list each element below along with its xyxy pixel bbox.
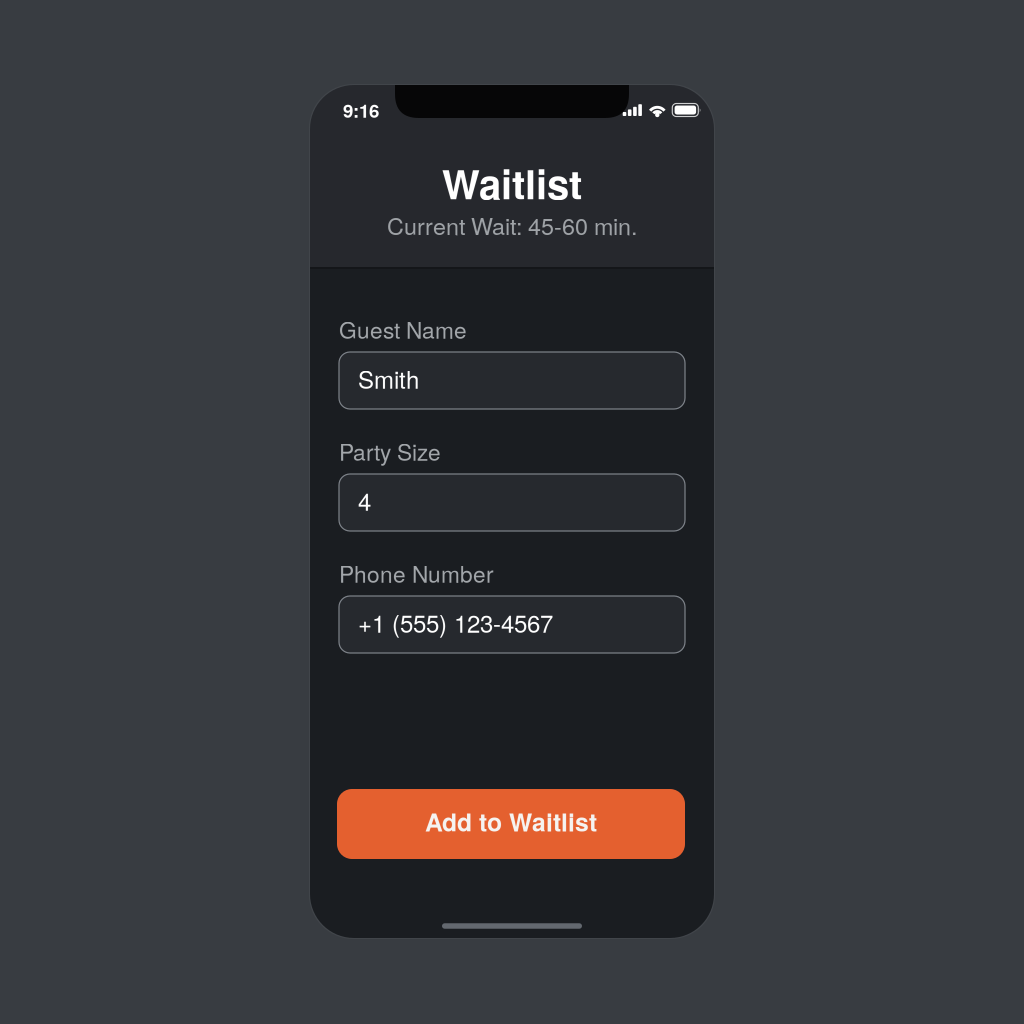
staticText: Current Wait: 45-60 min. [387,208,637,242]
button[interactable]: Add to Waitlist [337,789,685,859]
staticText: +1 (555) 123-4567 [358,605,553,640]
staticText: 4 [358,483,371,518]
staticText: Smith [358,361,419,396]
staticText: 9:16 [343,97,379,123]
staticText: Guest Name [339,313,467,345]
button[interactable]: Party Size [339,474,685,531]
staticText: Waitlist [442,154,582,212]
staticText: Phone Number [339,557,494,589]
staticText: Add to Waitlist [425,804,597,839]
button[interactable]: Guest Name [339,352,685,409]
button[interactable]: Phone Number [339,596,685,653]
staticText: Party Size [339,435,441,467]
